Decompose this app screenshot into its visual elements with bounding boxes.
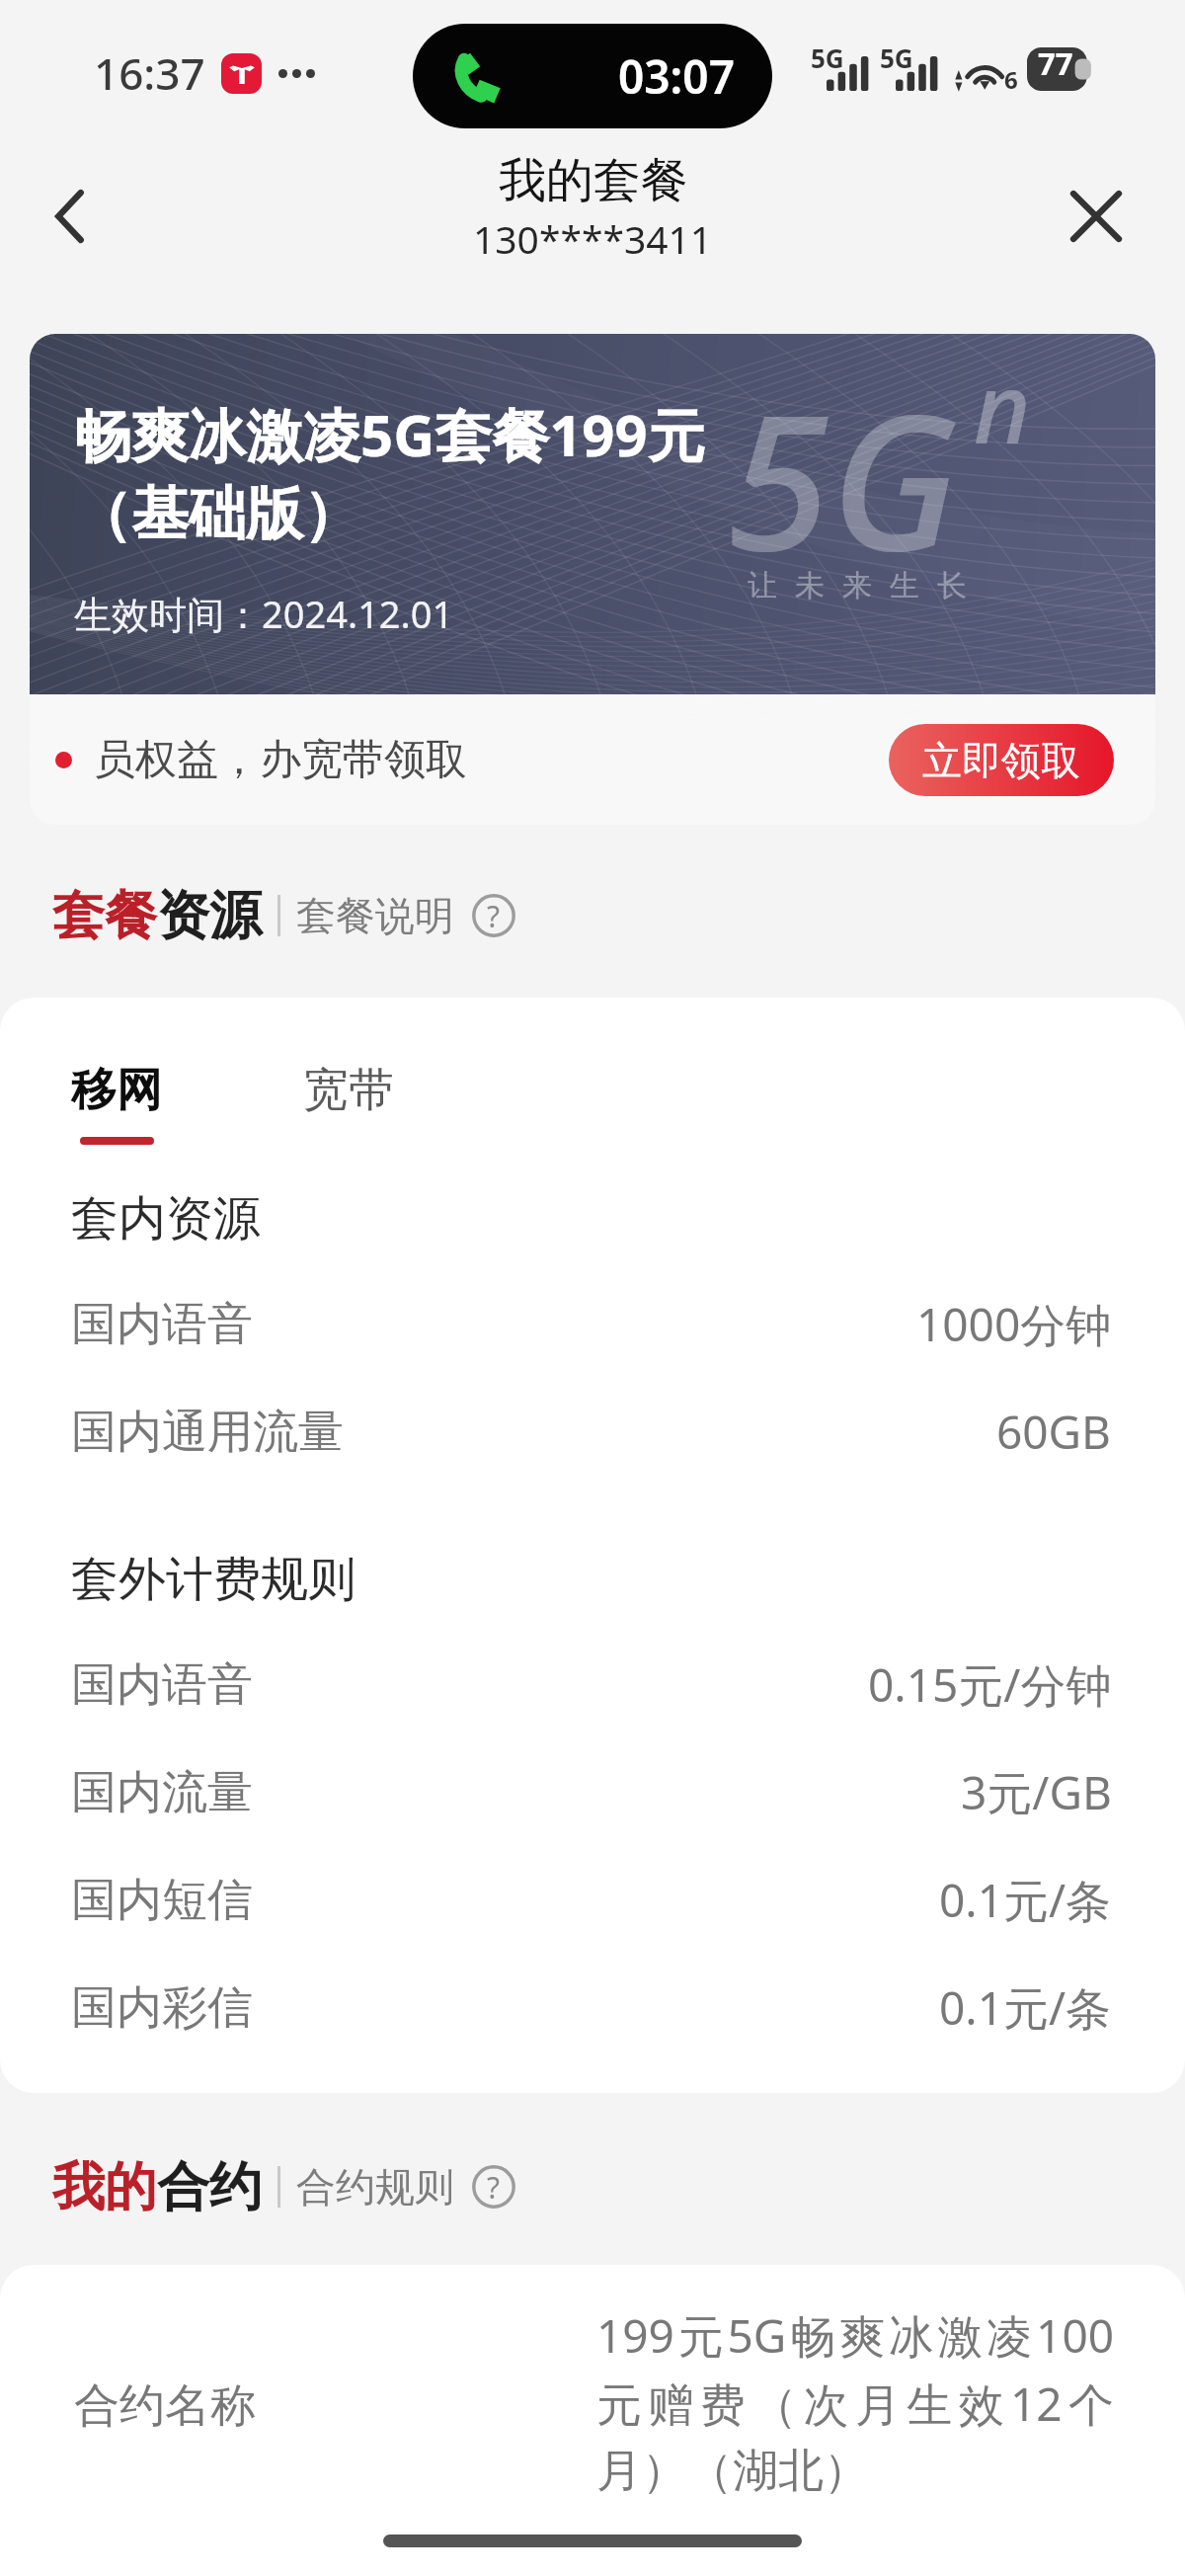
- staticText: 国内彩信: [71, 1979, 253, 2037]
- staticText: 130****3411: [473, 212, 713, 265]
- staticText: 员权益，办宽带领取: [94, 734, 467, 786]
- staticText: 0.1元/条: [939, 1869, 1112, 1931]
- button[interactable]: 套餐说明: [296, 891, 515, 940]
- staticText: ?: [487, 896, 501, 936]
- staticText: 套内资源: [71, 1189, 261, 1248]
- button[interactable]: 立即领取: [889, 724, 1114, 796]
- staticText: 16:37: [94, 43, 205, 103]
- staticText: 03:07: [618, 45, 735, 108]
- staticText: 合约: [157, 2154, 262, 2220]
- staticText: 国内流量: [71, 1764, 253, 1821]
- button[interactable]: 合约规则: [296, 2162, 515, 2212]
- staticText: 0.1元/条: [939, 1976, 1112, 2039]
- staticText: 宽带: [303, 1062, 394, 1119]
- staticText: 0.15元/分钟: [868, 1653, 1112, 1716]
- button[interactable]: Back: [22, 169, 117, 264]
- staticText: n: [974, 340, 1031, 471]
- staticText: 套外计费规则: [71, 1550, 355, 1609]
- staticText: 3元/GB: [961, 1761, 1112, 1823]
- staticText: 6: [1004, 63, 1018, 96]
- staticText: 合约名称: [74, 2377, 256, 2435]
- staticText: 1000分钟: [916, 1293, 1112, 1355]
- staticText: 我的套餐: [499, 151, 688, 210]
- staticText: 我的: [52, 2154, 157, 2220]
- staticText: 国内语音: [71, 1296, 253, 1353]
- staticText: 77: [1038, 42, 1073, 84]
- staticText: 合约规则: [296, 2162, 454, 2212]
- staticText: 国内语音: [71, 1656, 253, 1714]
- staticText: 国内短信: [71, 1872, 253, 1929]
- staticText: 5G: [727, 350, 959, 605]
- staticText: 畅爽冰激凌5G套餐199元 （基础版）: [74, 395, 705, 550]
- staticText: 5G: [811, 40, 844, 75]
- staticText: 立即领取: [922, 736, 1080, 785]
- staticText: 199元5G畅爽冰激凌100元赠费（次月生效12个月）（湖北）: [596, 2304, 1114, 2500]
- staticText: 生效时间：2024.12.01: [74, 588, 454, 639]
- staticText: 让未来生长: [739, 567, 976, 604]
- staticText: ?: [487, 2167, 501, 2208]
- staticText: 移网: [71, 1062, 162, 1119]
- staticText: 国内通用流量: [71, 1404, 344, 1461]
- staticText: 5G: [880, 40, 913, 75]
- staticText: 套餐: [52, 883, 157, 949]
- staticText: 资源: [157, 883, 262, 949]
- staticText: 套餐说明: [296, 891, 454, 940]
- button[interactable]: Close: [1049, 169, 1144, 264]
- staticText: 60GB: [996, 1401, 1112, 1463]
